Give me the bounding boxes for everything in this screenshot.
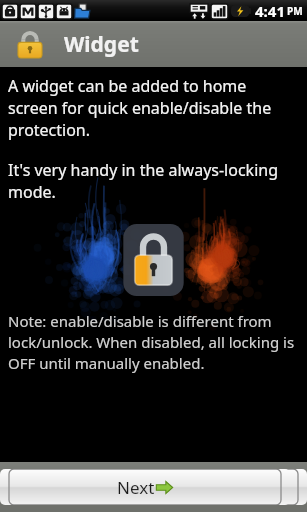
staticText: A widget can be added to home screen for…	[8, 75, 299, 141]
button[interactable]: Next	[0, 469, 290, 505]
staticText: Next	[117, 476, 155, 499]
staticText: 4:41	[255, 1, 285, 21]
staticText: Back	[152, 476, 190, 499]
other: App lock icon	[18, 31, 42, 58]
staticText: Note: enable/disable is different from l…	[8, 311, 299, 374]
staticText: Widget	[64, 30, 139, 59]
staticText: PM	[287, 4, 303, 18]
staticText: It's very handy in the always-locking mo…	[8, 159, 299, 203]
button[interactable]: Back	[17, 469, 307, 505]
